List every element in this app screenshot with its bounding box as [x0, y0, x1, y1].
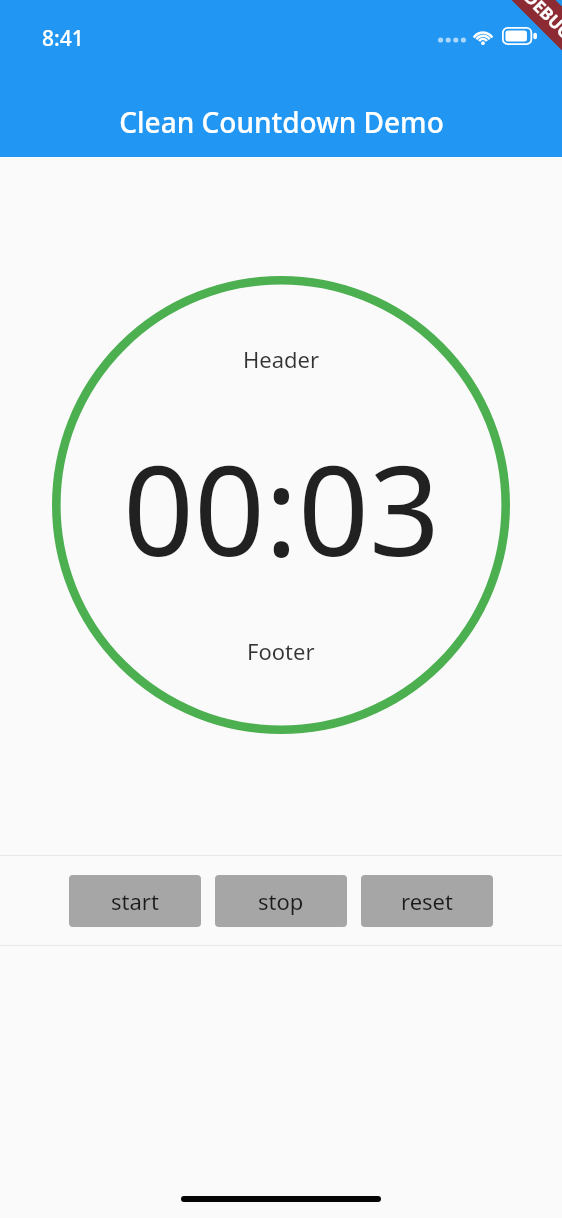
button[interactable]: reset	[361, 875, 493, 927]
staticText: reset	[401, 886, 453, 916]
staticText: Clean Countdown Demo	[119, 103, 444, 141]
staticText: start	[111, 886, 159, 916]
button[interactable]: start	[69, 875, 201, 927]
staticText: 00:03	[123, 423, 440, 592]
staticText: DEBUG	[519, 0, 562, 44]
staticText: Footer	[247, 636, 315, 666]
staticText: stop	[258, 886, 304, 916]
staticText: 8:41	[42, 24, 84, 53]
staticText: Header	[243, 344, 320, 374]
button[interactable]: stop	[215, 875, 347, 927]
